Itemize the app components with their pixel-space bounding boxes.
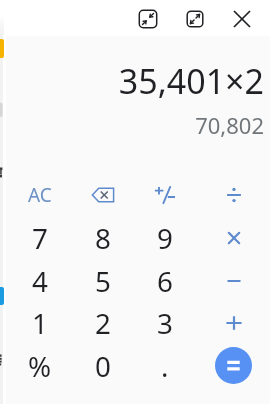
button[interactable]: Multiply [213, 217, 255, 259]
staticText: 7 [32, 219, 48, 257]
button[interactable]: 6 [144, 260, 186, 302]
button[interactable]: 4 [19, 260, 61, 302]
staticText: 3 [157, 304, 173, 342]
button[interactable]: Collapse window [134, 5, 162, 33]
button[interactable]: 8 [82, 217, 124, 259]
staticText: 70,802 [195, 110, 264, 140]
button[interactable]: Backspace [82, 174, 124, 216]
button[interactable]: Equals [215, 347, 252, 384]
button[interactable]: Expand window [181, 5, 209, 33]
staticText: 0 [95, 347, 111, 385]
button[interactable]: 3 [144, 302, 186, 344]
button[interactable]: 9 [144, 217, 186, 259]
button[interactable]: Divide [213, 174, 255, 216]
button[interactable]: Close [228, 5, 256, 33]
button[interactable]: AC [19, 174, 61, 216]
button[interactable]: 0 [82, 345, 124, 387]
button[interactable]: . [144, 345, 186, 387]
button[interactable]: Plus minus [144, 174, 186, 216]
button[interactable]: 2 [82, 302, 124, 344]
button[interactable]: % [19, 345, 61, 387]
staticText: 6 [157, 262, 173, 300]
staticText: . [161, 347, 169, 385]
staticText: 35,401×2 [118, 58, 264, 104]
button[interactable]: 1 [19, 302, 61, 344]
staticText: 4 [32, 262, 48, 300]
button[interactable]: Plus [213, 302, 255, 344]
staticText: 9 [157, 219, 173, 257]
staticText: 1 [32, 304, 48, 342]
staticText: 8 [95, 219, 111, 257]
staticText: 2 [95, 304, 111, 342]
staticText: AC [28, 182, 52, 208]
button[interactable]: 7 [19, 217, 61, 259]
button[interactable]: Minus [213, 260, 255, 302]
button[interactable]: 5 [82, 260, 124, 302]
staticText: % [28, 347, 52, 385]
staticText: 5 [95, 262, 111, 300]
